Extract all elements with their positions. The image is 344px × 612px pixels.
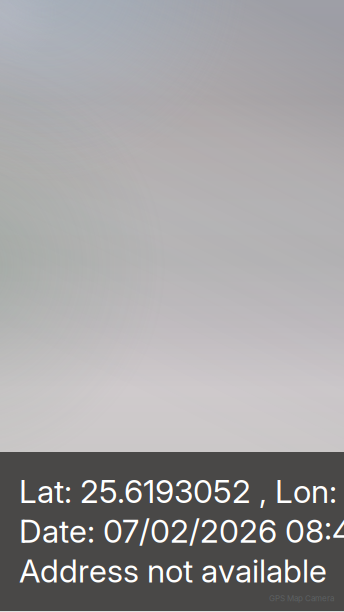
staticText: Lat: 25.6193052 , Lon: bbox=[19, 472, 337, 511]
staticText: Date: 07/02/2026 08:4 bbox=[19, 512, 344, 550]
staticText: Address not available bbox=[19, 551, 327, 590]
staticText: GPS Map Camera bbox=[269, 593, 334, 603]
